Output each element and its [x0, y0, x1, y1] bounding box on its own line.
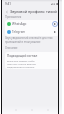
staticText: приложений в этом режиме — [5, 40, 41, 44]
staticText: WhatsApp — [12, 22, 27, 26]
button[interactable]: WhatsApp — [7, 20, 58, 28]
staticText: уведомления в тишине — [7, 65, 35, 68]
staticText: Приложения — [5, 15, 22, 19]
button[interactable]: Toggle — [52, 29, 58, 35]
button[interactable]: Home — [14, 108, 18, 112]
staticText: 9:41 — [5, 2, 11, 6]
button[interactable]: Telegram — [7, 28, 58, 36]
staticText: Звуковой профиль: тихий — [10, 9, 57, 14]
staticText: Telegram — [12, 30, 26, 34]
staticText: получать только важные — [7, 62, 36, 65]
staticText: Подходящий сигнал — [7, 54, 38, 58]
button[interactable]: Toggle — [52, 21, 58, 27]
button[interactable]: Profile — [46, 108, 50, 112]
button[interactable]: Search — [30, 108, 34, 112]
staticText: Включите режим чтобы — [7, 59, 35, 62]
button[interactable]: Back — [4, 9, 9, 14]
staticText: Звук уведомлений отключён для этих — [5, 36, 53, 40]
staticText: Описание — [5, 46, 18, 50]
